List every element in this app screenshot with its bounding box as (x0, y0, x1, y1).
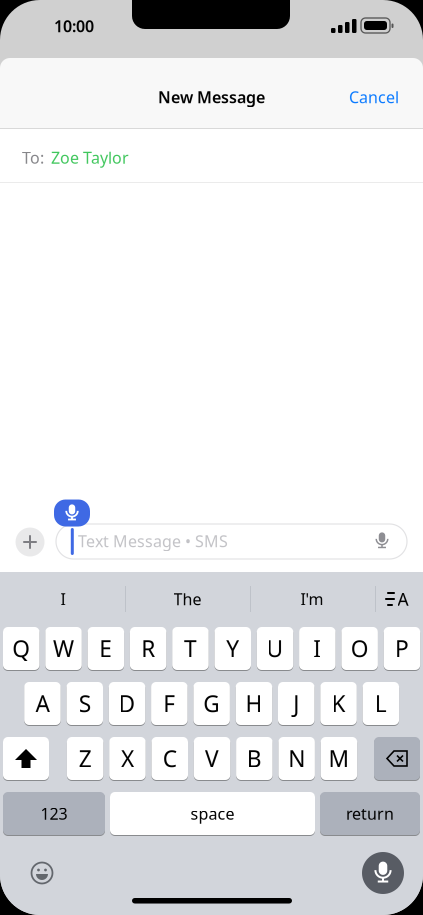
staticText: 10:00 (54, 15, 94, 37)
staticText: S (79, 688, 91, 718)
button[interactable]: Text Message (56, 524, 407, 559)
button[interactable]: Dictate (373, 532, 391, 550)
button[interactable]: return (320, 791, 420, 835)
staticText: space (190, 803, 234, 824)
button[interactable]: Y (214, 626, 251, 670)
staticText: M (328, 743, 349, 773)
staticText: C (163, 743, 177, 773)
staticText: L (375, 688, 387, 718)
button[interactable]: Writing Tools (387, 589, 411, 609)
button[interactable]: Shift (3, 736, 49, 780)
staticText: 123 (40, 803, 67, 824)
staticText: I'm (300, 588, 323, 610)
staticText: I (60, 588, 65, 610)
staticText: W (53, 633, 74, 663)
button[interactable]: R (130, 626, 166, 670)
button[interactable]: F (151, 681, 188, 725)
staticText: N (288, 743, 305, 773)
button[interactable]: A (24, 681, 61, 725)
button[interactable]: Q (3, 626, 39, 670)
button[interactable]: W (45, 626, 82, 670)
button[interactable]: space (110, 791, 315, 835)
staticText: New Message (158, 86, 265, 108)
button[interactable]: S (66, 681, 103, 725)
button[interactable]: Z (67, 736, 103, 780)
staticText: K (331, 688, 345, 718)
button[interactable]: C (151, 736, 188, 780)
staticText: Q (12, 633, 30, 663)
staticText: return (346, 803, 394, 824)
staticText: B (247, 743, 262, 773)
button[interactable]: K (320, 681, 357, 725)
staticText: Zoe Taylor (51, 147, 129, 168)
staticText: F (163, 688, 175, 718)
button[interactable]: X (109, 736, 146, 780)
staticText: P (395, 633, 409, 663)
staticText: T (184, 633, 197, 663)
button[interactable]: Zoe Taylor (51, 147, 129, 168)
button[interactable]: B (236, 736, 273, 780)
staticText: O (351, 633, 369, 663)
button[interactable]: J (278, 681, 314, 725)
staticText: I (313, 633, 321, 663)
button[interactable]: Apps (15, 527, 44, 556)
button[interactable]: Dictate (362, 852, 404, 894)
staticText: X (121, 743, 134, 773)
button[interactable]: T (172, 626, 209, 670)
staticText: U (266, 633, 283, 663)
button[interactable]: E (88, 626, 124, 670)
button[interactable]: I'm (252, 579, 372, 619)
button[interactable]: H (236, 681, 272, 725)
button[interactable]: I (299, 626, 336, 670)
button[interactable]: Cancel (329, 75, 419, 119)
button[interactable]: U (257, 626, 293, 670)
staticText: Z (79, 743, 92, 773)
staticText: A (397, 587, 408, 610)
button[interactable]: G (193, 681, 230, 725)
staticText: The (173, 588, 201, 610)
button[interactable]: I (3, 579, 123, 619)
button[interactable]: P (384, 626, 420, 670)
staticText: Y (226, 633, 239, 663)
button[interactable]: Delete (374, 736, 420, 780)
button[interactable]: Dictation (54, 499, 90, 526)
button[interactable]: D (109, 681, 145, 725)
button[interactable]: N (278, 736, 315, 780)
button[interactable]: L (363, 681, 399, 725)
staticText: A (35, 688, 49, 718)
staticText: D (118, 688, 135, 718)
staticText: H (245, 688, 262, 718)
button[interactable]: 123 (3, 791, 105, 835)
staticText: G (203, 688, 220, 718)
button[interactable]: The (127, 579, 247, 619)
button[interactable]: V (194, 736, 230, 780)
staticText: To: (22, 147, 44, 168)
staticText: R (141, 633, 155, 663)
button[interactable]: Emoji (31, 862, 52, 883)
staticText: E (99, 633, 112, 663)
staticText: Text Message • SMS (78, 530, 228, 552)
button[interactable]: M (321, 736, 357, 780)
button[interactable]: O (341, 626, 378, 670)
staticText: Cancel (349, 86, 399, 108)
staticText: V (205, 743, 219, 773)
staticText: J (293, 688, 299, 718)
